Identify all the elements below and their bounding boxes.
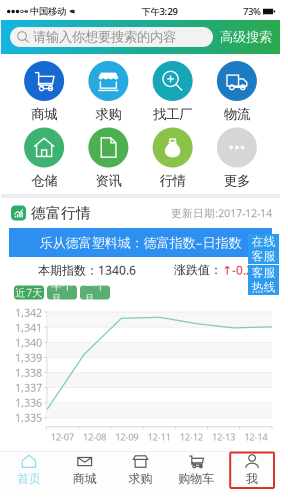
staticText: 涨跌值：	[174, 263, 222, 277]
button[interactable]: 商城	[12, 61, 76, 122]
staticText: 12-11	[147, 431, 170, 443]
staticText: 客服	[251, 265, 275, 280]
button[interactable]: 更多	[205, 127, 269, 189]
staticText: 首页	[17, 471, 41, 486]
button[interactable]: 高级搜索	[220, 29, 272, 45]
staticText: 1,341	[15, 320, 42, 335]
staticText: 12-12	[180, 431, 203, 443]
staticText: 1,338	[15, 365, 42, 380]
staticText: 资讯	[95, 172, 121, 189]
button[interactable]: 仓储	[12, 127, 76, 189]
staticText: 购物车	[178, 471, 214, 486]
button[interactable]: 请输入你想要搜索的内容	[10, 27, 213, 47]
staticText: 中国移动	[30, 6, 66, 17]
button[interactable]: 近7天	[14, 285, 44, 299]
staticText: 行情	[160, 172, 186, 189]
staticText: 12-07	[51, 431, 74, 443]
staticText: 半个月	[51, 279, 73, 306]
button[interactable]: 找工厂	[140, 61, 205, 122]
staticText: 1,340	[15, 335, 42, 350]
staticText: 1,336	[15, 395, 42, 410]
staticText: 本期指数：1340.6	[38, 262, 136, 278]
staticText: 物流	[224, 106, 250, 122]
button[interactable]: 一个月	[80, 285, 110, 299]
staticText: 找工厂	[153, 106, 192, 122]
staticText: 在线	[251, 234, 275, 249]
staticText: 1,339	[15, 350, 42, 365]
button[interactable]: 在线	[248, 234, 279, 264]
button[interactable]: 行情	[140, 127, 205, 189]
button[interactable]: 求购	[113, 451, 168, 489]
staticText: 1,335	[15, 410, 42, 425]
staticText: 12-08	[83, 431, 106, 443]
staticText: 更新日期:2017-12-14	[171, 206, 272, 220]
staticText: 一个月	[84, 279, 106, 306]
button[interactable]: 求购	[76, 61, 140, 122]
staticText: 商城	[73, 471, 97, 486]
button[interactable]: 物流	[205, 61, 269, 122]
staticText: 乐从德富塑料城：德富指数–日指数	[39, 234, 241, 251]
button[interactable]: 我	[224, 451, 280, 489]
button[interactable]: 半个月	[47, 285, 77, 299]
staticText: 12-13	[212, 431, 235, 443]
button[interactable]: 首页	[1, 451, 57, 489]
button[interactable]: 购物车	[168, 451, 224, 489]
staticText: 近7天	[15, 285, 43, 300]
staticText: 更多	[224, 172, 250, 189]
staticText: 我	[246, 471, 258, 486]
staticText: 73%	[243, 5, 261, 18]
staticText: 求购	[128, 471, 152, 486]
staticText: 客服	[251, 249, 275, 264]
staticText: ↑-0.21	[222, 262, 260, 278]
staticText: 高级搜索	[220, 29, 272, 45]
button[interactable]: 客服	[248, 265, 279, 295]
staticText: 1,342	[15, 305, 42, 320]
staticText: 德富行情	[31, 204, 91, 222]
staticText: 商城	[31, 106, 57, 122]
staticText: 下午3:29	[141, 5, 177, 18]
staticText: 热线	[251, 280, 275, 295]
staticText: 12-09	[115, 431, 138, 443]
button[interactable]: 商城	[57, 451, 113, 489]
staticText: 请输入你想要搜索的内容	[33, 29, 176, 45]
button[interactable]: 资讯	[76, 127, 140, 189]
staticText: 1,337	[15, 380, 42, 395]
staticText: 仓储	[31, 172, 57, 189]
staticText: 求购	[95, 106, 121, 122]
staticText: 12-14	[244, 431, 267, 443]
